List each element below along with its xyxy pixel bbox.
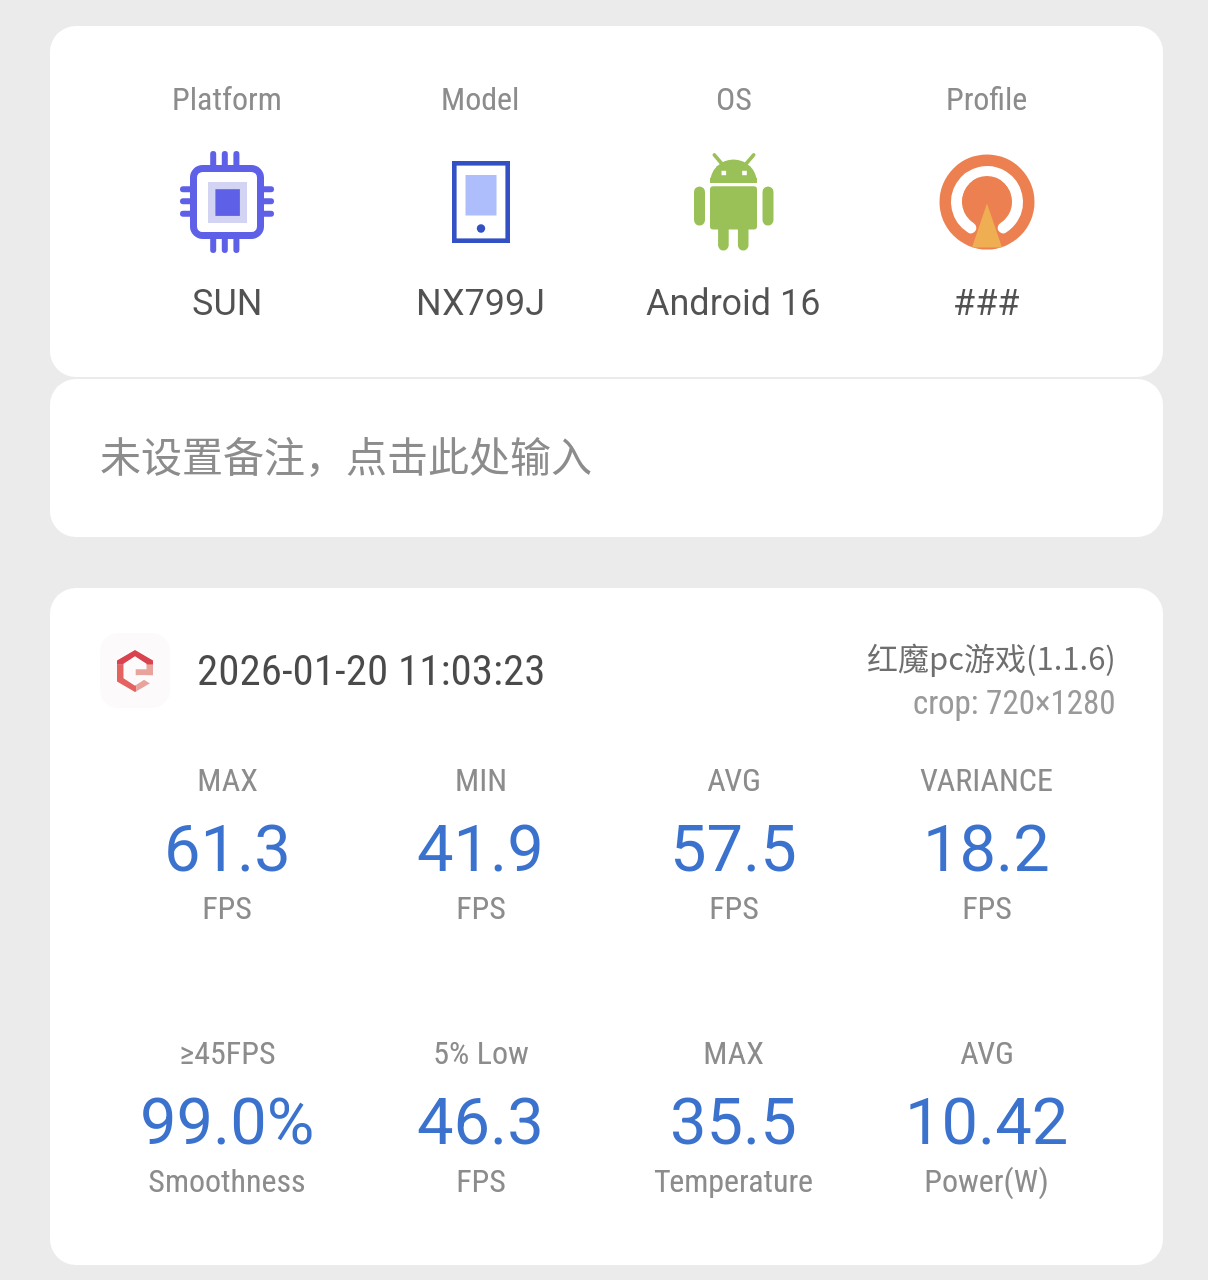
staticText: 35.5	[670, 1084, 797, 1160]
button[interactable]: AVG	[860, 1034, 1113, 1200]
staticText: FPS	[202, 889, 252, 927]
staticText: MAX	[703, 1034, 764, 1072]
staticText: ≥45FPS	[179, 1034, 276, 1072]
button[interactable]: Profile	[860, 26, 1113, 324]
other: Android	[684, 150, 784, 254]
other: Performance profile	[937, 150, 1037, 254]
staticText: 红魔pc游戏(1.1.6)	[867, 634, 1116, 679]
button[interactable]: 未设置备注，点击此处输入	[50, 379, 1163, 537]
staticText: Power(W)	[924, 1162, 1049, 1200]
staticText: ###	[953, 282, 1020, 324]
staticText: Android 16	[646, 282, 821, 324]
staticText: SUN	[192, 282, 263, 324]
button[interactable]: Platform	[100, 26, 354, 324]
button[interactable]: AVG	[607, 761, 860, 927]
staticText: 41.9	[417, 811, 544, 887]
staticText: FPS	[962, 889, 1012, 927]
staticText: 未设置备注，点击此处输入	[100, 424, 592, 483]
button[interactable]: 5% Low	[354, 1034, 607, 1200]
staticText: 10.42	[905, 1084, 1069, 1160]
button[interactable]: MAX	[100, 761, 354, 927]
staticText: 18.2	[923, 811, 1050, 887]
staticText: FPS	[456, 1162, 506, 1200]
button[interactable]: App icon	[100, 633, 170, 708]
staticText: 57.5	[670, 811, 797, 887]
staticText: 61.3	[164, 811, 291, 887]
staticText: 5% Low	[433, 1034, 529, 1072]
button[interactable]: Model	[354, 26, 607, 324]
staticText: Model	[441, 80, 520, 118]
button[interactable]: MIN	[354, 761, 607, 927]
staticText: NX799J	[416, 282, 546, 324]
other: Phone	[431, 150, 531, 254]
staticText: Platform	[172, 80, 282, 118]
staticText: OS	[716, 80, 752, 118]
staticText: 2026-01-20 11:03:23	[197, 645, 546, 695]
button[interactable]: App icon	[50, 588, 1163, 1265]
staticText: FPS	[709, 889, 759, 927]
button[interactable]: ≥45FPS	[100, 1034, 354, 1200]
staticText: Profile	[946, 80, 1028, 118]
staticText: Temperature	[654, 1162, 813, 1200]
button[interactable]: MAX	[607, 1034, 860, 1200]
staticText: 46.3	[417, 1084, 544, 1160]
staticText: 99.0%	[140, 1084, 315, 1160]
staticText: VARIANCE	[920, 761, 1053, 799]
staticText: MIN	[455, 761, 507, 799]
staticText: MAX	[197, 761, 258, 799]
staticText: FPS	[456, 889, 506, 927]
other: Chip	[177, 150, 277, 254]
button[interactable]: VARIANCE	[860, 761, 1113, 927]
staticText: AVG	[707, 761, 761, 799]
staticText: crop: 720×1280	[913, 683, 1116, 722]
button[interactable]: OS	[607, 26, 860, 324]
staticText: Smoothness	[148, 1162, 306, 1200]
staticText: AVG	[960, 1034, 1014, 1072]
